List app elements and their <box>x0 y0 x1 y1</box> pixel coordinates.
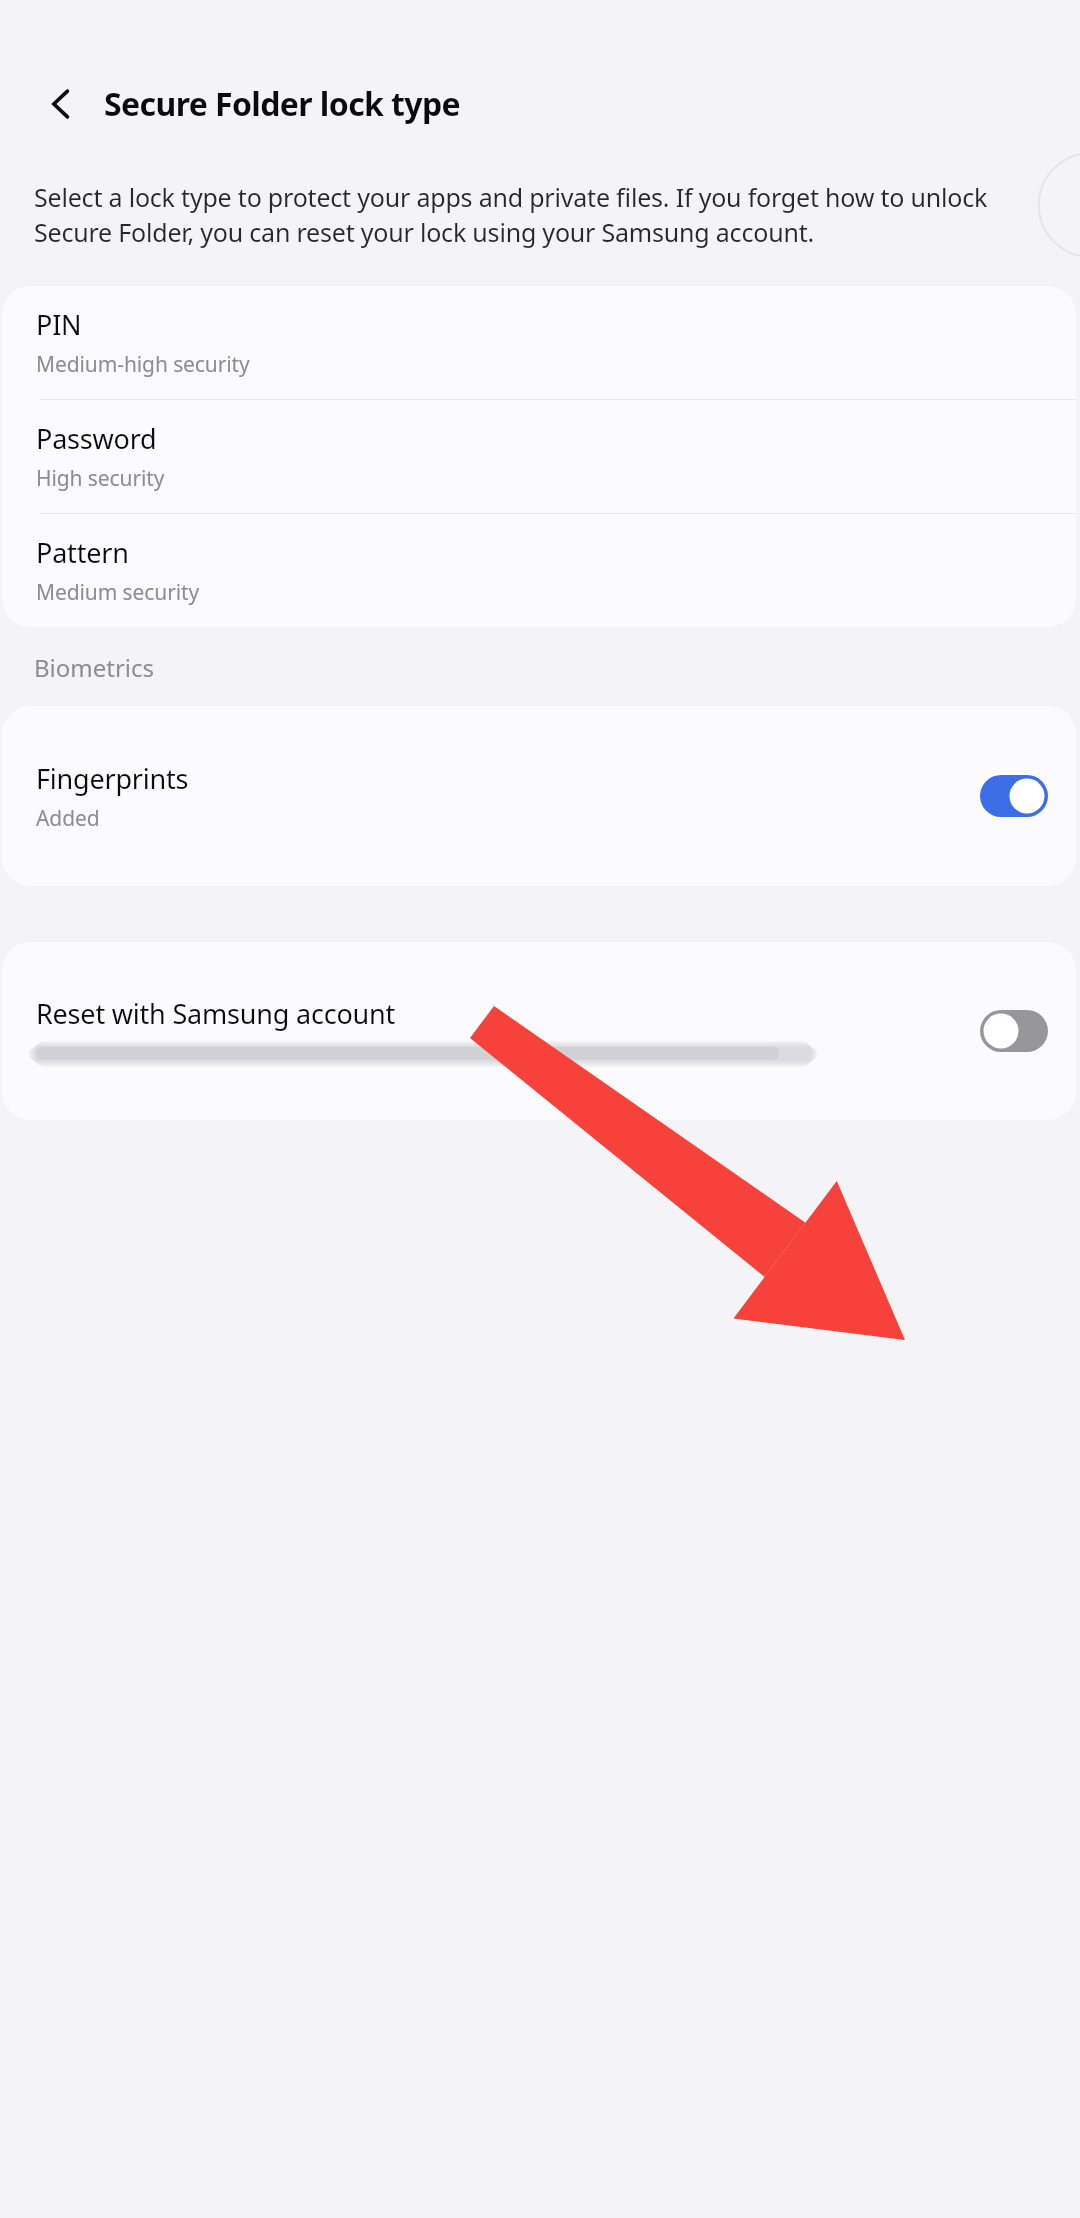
staticText: Biometrics <box>34 651 155 684</box>
staticText: Medium-high security <box>36 350 250 379</box>
staticText: Reset with Samsung account <box>36 995 396 1032</box>
staticText: PIN <box>36 306 82 343</box>
staticText: Password <box>36 420 157 457</box>
button[interactable]: Back <box>36 78 88 130</box>
staticText: Secure Folder lock type <box>104 82 461 126</box>
staticText: Select a lock type to protect your apps … <box>34 180 1030 250</box>
button[interactable]: Reset with Samsung account <box>2 942 1076 1120</box>
button[interactable]: Pattern <box>2 514 1076 627</box>
button[interactable]: On <box>980 775 1048 817</box>
staticText: Pattern <box>36 534 129 571</box>
button[interactable]: Password <box>2 400 1076 513</box>
staticText: Fingerprints <box>36 760 189 797</box>
button[interactable]: Off <box>980 1010 1048 1052</box>
button[interactable]: PIN <box>2 286 1076 399</box>
button[interactable]: Fingerprints <box>2 706 1076 886</box>
staticText: High security <box>36 464 165 493</box>
staticText: Added <box>36 804 100 833</box>
staticText: Medium security <box>36 578 200 607</box>
